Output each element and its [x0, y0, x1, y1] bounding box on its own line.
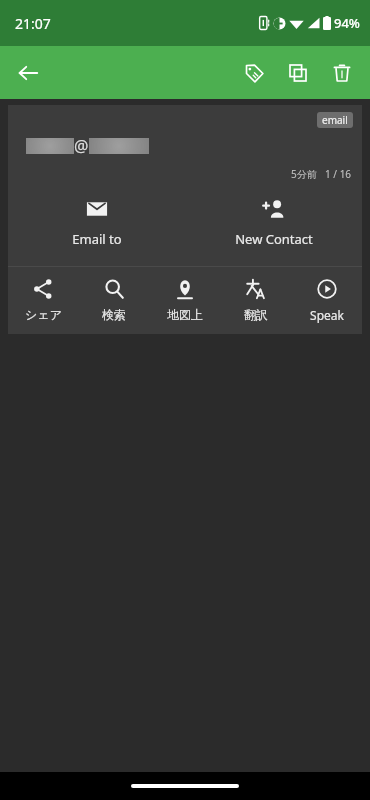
button[interactable]: New Contact [185, 193, 362, 252]
staticText: 21:07 [15, 14, 51, 33]
button[interactable]: 地図上 [149, 276, 220, 324]
staticText: @ [74, 135, 89, 157]
staticText: Email to [72, 230, 122, 248]
button[interactable]: Email to [8, 193, 185, 252]
staticText: 翻訳 [244, 307, 268, 322]
staticText: New Contact [235, 230, 313, 248]
staticText: 5分前 [291, 167, 317, 181]
staticText: 94% [334, 14, 360, 32]
staticText: 検索 [102, 307, 126, 322]
staticText: Speak [310, 307, 344, 323]
staticText: シェア [25, 307, 62, 322]
staticText: email [322, 113, 348, 127]
button[interactable]: Back [6, 51, 50, 95]
button[interactable]: Label [232, 51, 276, 95]
button[interactable]: Copy [276, 51, 320, 95]
staticText: 1 / 16 [325, 167, 352, 181]
button[interactable]: Speak [291, 276, 362, 325]
button[interactable]: 検索 [78, 276, 149, 324]
staticText: 地図上 [167, 307, 203, 322]
button[interactable]: Delete [320, 51, 364, 95]
button[interactable]: email [317, 112, 353, 128]
button[interactable]: シェア [8, 276, 78, 324]
button[interactable]: 翻訳 [220, 276, 291, 324]
